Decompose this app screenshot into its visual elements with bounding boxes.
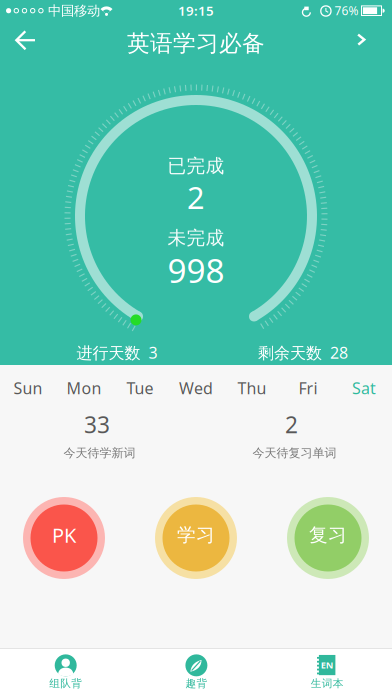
staticText: Tue (126, 377, 153, 399)
staticText: 19:15 (178, 2, 214, 19)
button[interactable]: Tue (112, 365, 168, 411)
staticText: Sun (13, 377, 42, 399)
staticText: 学习 (177, 523, 215, 546)
staticText: PK (52, 522, 76, 548)
staticText: Fri (298, 377, 317, 399)
staticText: 组队背 (49, 677, 82, 690)
staticText: 今天待学新词 (63, 446, 135, 460)
button[interactable]: 复习 (287, 497, 369, 579)
button[interactable]: Sat (336, 365, 392, 411)
staticText: 76% (334, 2, 358, 18)
staticText: Mon (66, 377, 101, 399)
staticText: Thu (237, 377, 266, 399)
button[interactable]: Next (347, 20, 391, 64)
staticText: 进行天数 3 (76, 342, 157, 363)
button[interactable]: Fri (280, 365, 336, 411)
staticText: EN (321, 659, 334, 671)
button[interactable]: Sun (0, 365, 56, 411)
staticText: Wed (179, 377, 213, 399)
staticText: 剩余天数 28 (258, 342, 348, 363)
staticText: 英语学习必备 (127, 30, 265, 57)
button[interactable]: Mon (56, 365, 112, 411)
staticText: 今天待复习单词 (252, 446, 336, 460)
staticText: 33 (84, 409, 110, 439)
button[interactable]: Thu (224, 365, 280, 411)
staticText: 复习 (309, 523, 347, 546)
button[interactable]: Wed (168, 365, 224, 411)
button[interactable]: EN (261, 648, 392, 696)
button[interactable]: Back (0, 20, 44, 64)
staticText: 已完成 (167, 154, 224, 177)
staticText: 2 (285, 409, 298, 439)
staticText: 趣背 (185, 677, 207, 690)
staticText: 中国移动 (48, 2, 100, 19)
staticText: Sat (352, 377, 376, 399)
button[interactable]: 趣背 (131, 648, 261, 696)
button[interactable]: 组队背 (0, 648, 131, 696)
staticText: 998 (167, 248, 224, 292)
staticText: 2 (187, 177, 205, 217)
button[interactable]: 学习 (155, 497, 237, 579)
staticText: 未完成 (167, 226, 224, 249)
staticText: 生词本 (311, 677, 344, 690)
button[interactable]: PK (23, 497, 105, 579)
